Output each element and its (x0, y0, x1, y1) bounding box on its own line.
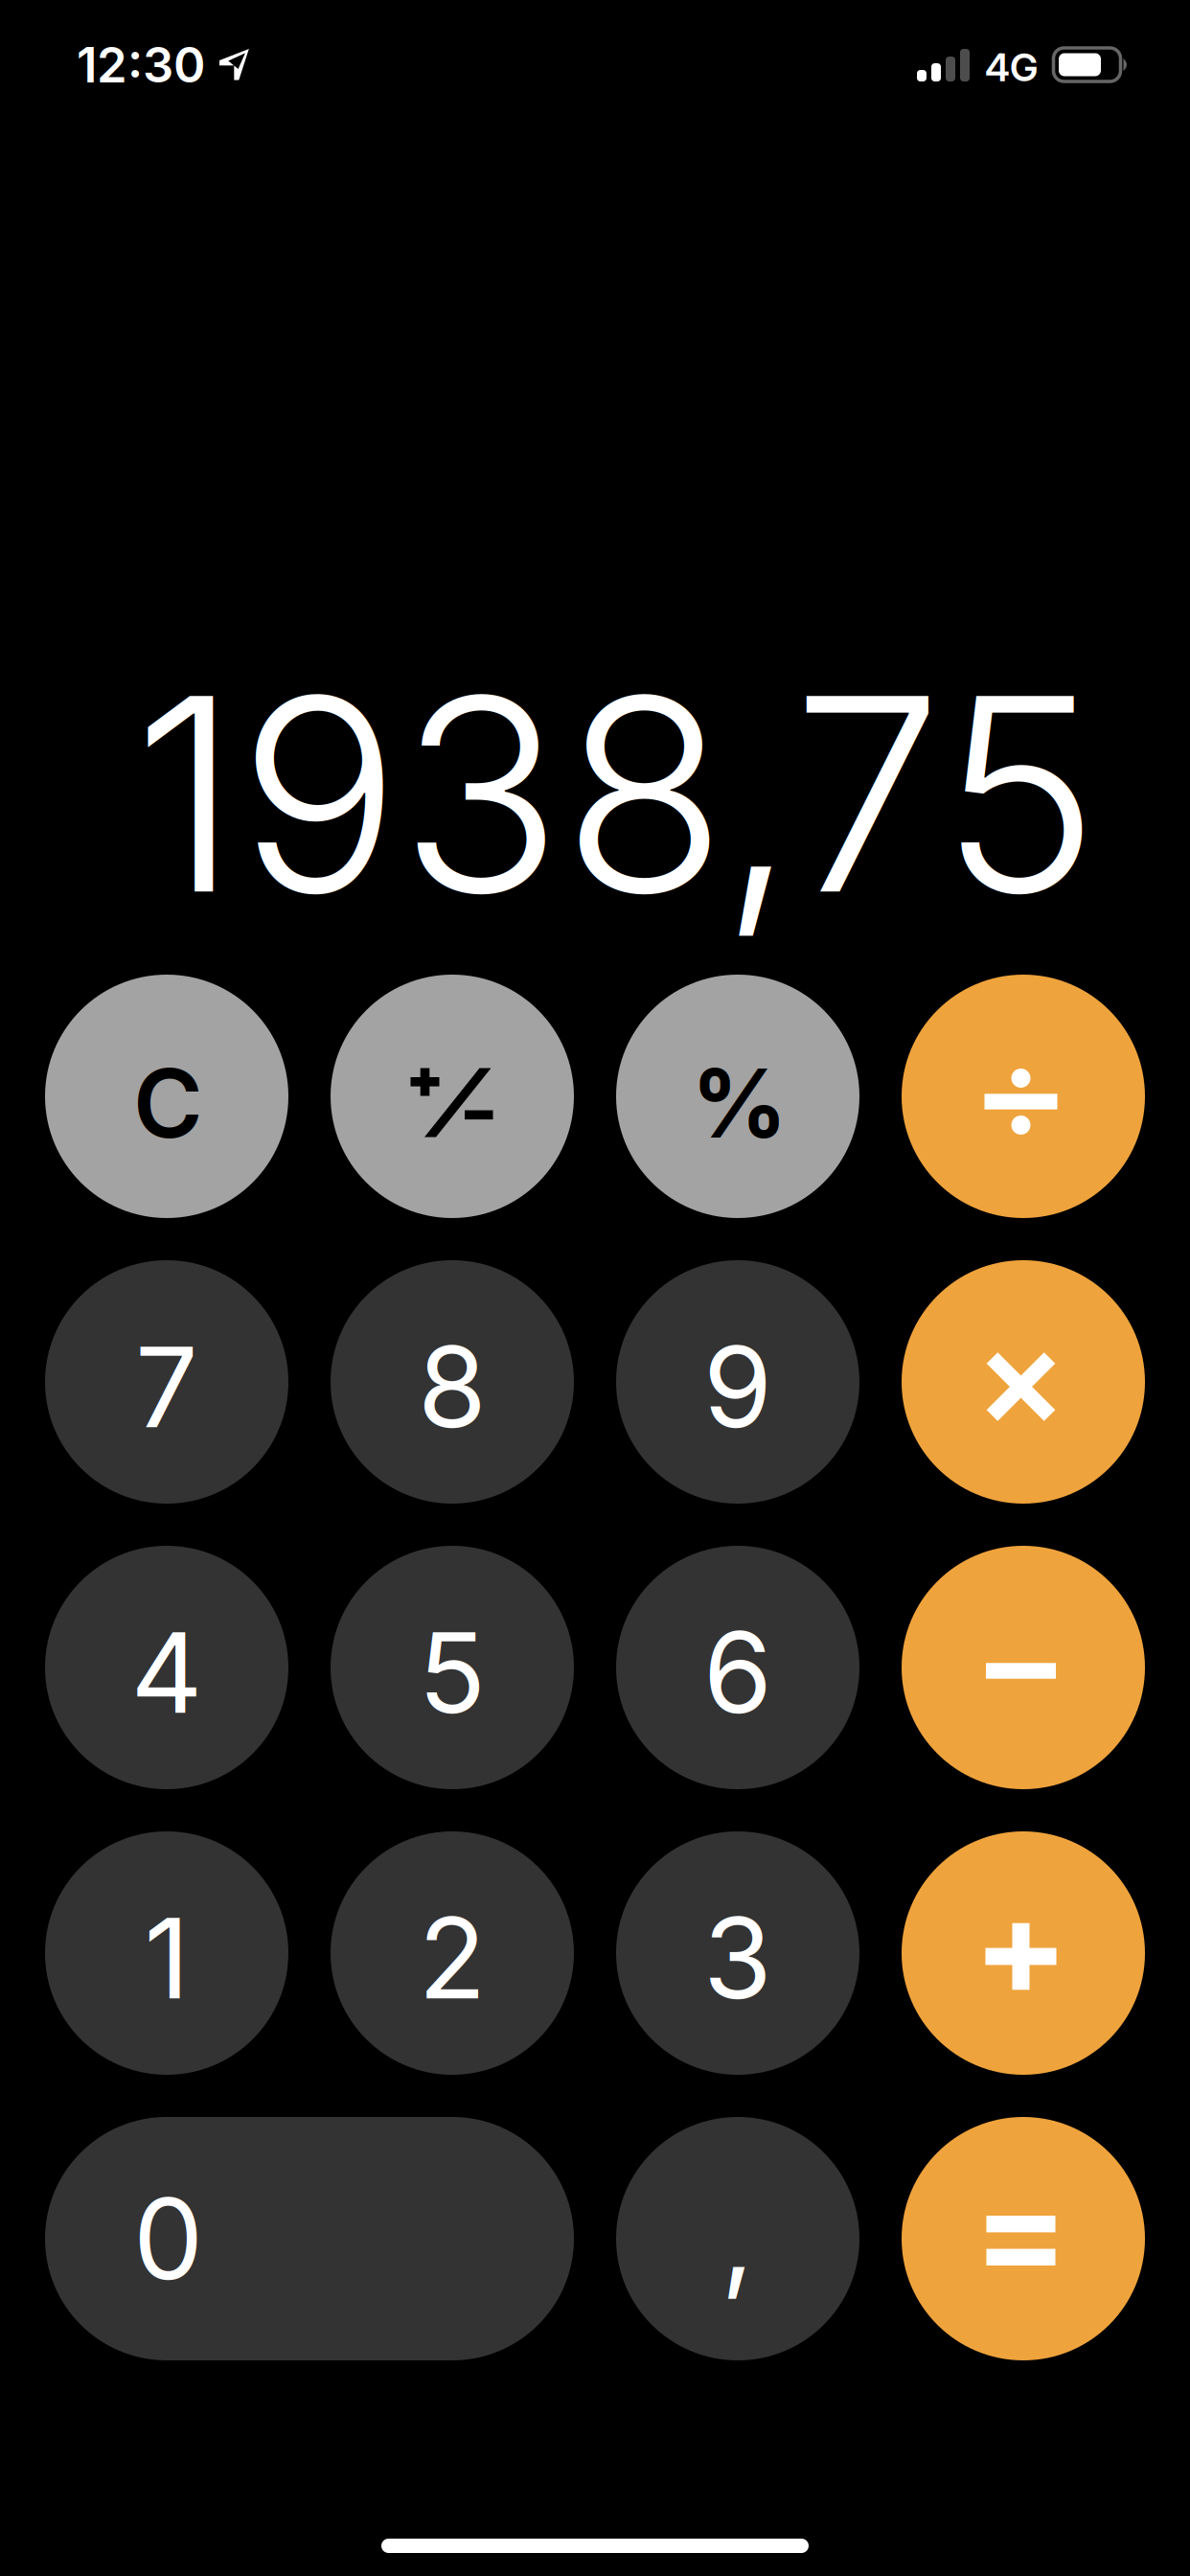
button[interactable]: Minus (902, 1546, 1145, 1789)
button[interactable]: 9 (616, 1260, 859, 1504)
staticText: 12:30 (77, 35, 205, 94)
button[interactable]: Toggle sign (331, 975, 574, 1218)
staticText: 1 (144, 1891, 189, 2025)
button[interactable]: Divide (902, 975, 1145, 1218)
button[interactable]: % (616, 975, 859, 1218)
button[interactable]: , (616, 2117, 859, 2360)
staticText: 3 (703, 1891, 772, 2025)
button[interactable]: 0 (45, 2117, 574, 2360)
button[interactable]: Multiply (902, 1260, 1145, 1504)
button[interactable]: 4 (45, 1546, 288, 1789)
staticText: 1938,75 (133, 632, 1099, 956)
staticText: 4 (131, 1605, 203, 1740)
staticText: 6 (703, 1605, 772, 1740)
staticText: 8 (418, 1319, 487, 1454)
button[interactable]: 3 (616, 1831, 859, 2075)
staticText: , (721, 2167, 755, 2306)
staticText: 4G (985, 44, 1038, 90)
button[interactable]: 5 (331, 1546, 574, 1789)
button[interactable]: Equals (902, 2117, 1145, 2360)
button[interactable]: 1 (45, 1831, 288, 2075)
button[interactable]: 6 (616, 1546, 859, 1789)
staticText: 9 (703, 1319, 772, 1454)
button[interactable]: 7 (45, 1260, 288, 1504)
button[interactable]: 8 (331, 1260, 574, 1504)
button[interactable]: Plus (902, 1831, 1145, 2075)
staticText: 7 (135, 1319, 198, 1454)
staticText: 2 (418, 1891, 486, 2025)
staticText: C (133, 1046, 203, 1160)
button[interactable]: 2 (331, 1831, 574, 2075)
staticText: % (691, 1046, 787, 1160)
button[interactable]: C (45, 975, 288, 1218)
staticText: 0 (133, 2171, 203, 2306)
staticText: 5 (418, 1605, 486, 1740)
